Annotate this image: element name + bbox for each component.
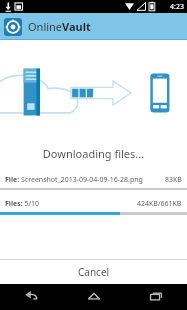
button[interactable]: Cancel: [0, 260, 187, 284]
button[interactable]: Home: [63, 284, 125, 310]
staticText: Cancel: [78, 265, 110, 279]
staticText: Downloading files...: [0, 146, 187, 161]
staticText: 424KB/661KB: [137, 199, 182, 209]
staticText: Files: 5/10: [5, 199, 137, 209]
staticText: 4:23: [170, 2, 184, 12]
other: OnlineVault logo: [4, 18, 22, 36]
staticText: 83KB: [165, 175, 182, 185]
staticText: File: Screenshot_2013-09-04-09-16-28.png: [5, 175, 165, 185]
button[interactable]: Back: [0, 284, 63, 310]
button[interactable]: Recent apps: [125, 284, 187, 310]
staticText: OnlineVault: [28, 19, 91, 34]
